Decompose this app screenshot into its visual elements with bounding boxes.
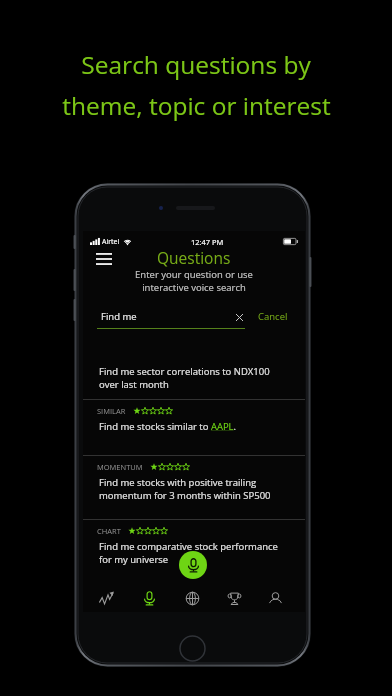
staticText: SIMILAR	[97, 406, 126, 416]
staticText: Airtel	[102, 237, 120, 247]
button[interactable]: Find me sector correlations to NDX100 ov…	[83, 358, 305, 398]
button[interactable]: MOMENTUM	[83, 455, 305, 509]
button[interactable]: Menu	[91, 248, 117, 270]
staticText: Cancel	[258, 310, 288, 323]
button[interactable]: Globe	[176, 585, 208, 611]
staticText: Find me	[101, 310, 137, 323]
button[interactable]: Voice search	[179, 551, 207, 579]
staticText: Find me comparative stock performance fo…	[99, 540, 278, 566]
staticText: 12:47 PM	[191, 237, 224, 247]
button[interactable]: Trending	[90, 585, 122, 611]
staticText: Enter your question or use interactive v…	[135, 268, 253, 294]
button[interactable]: SIMILAR	[83, 399, 305, 440]
staticText: Find me sector correlations to NDX100 ov…	[99, 365, 270, 391]
staticText: Find me stocks similar to AAPL.	[99, 420, 237, 433]
other: Clear	[236, 314, 243, 321]
button[interactable]: Profile	[259, 585, 291, 611]
staticText: Find me stocks with positive trailing mo…	[99, 476, 271, 502]
staticText: MOMENTUM	[97, 462, 143, 472]
button[interactable]: Cancel	[258, 310, 288, 323]
button[interactable]: Leaderboard	[218, 585, 250, 611]
button[interactable]: CHART	[83, 519, 305, 573]
button[interactable]: Voice search	[133, 585, 165, 611]
button[interactable]: Find me	[97, 305, 245, 331]
staticText: theme, topic or interest	[62, 89, 331, 122]
staticText: Questions	[157, 247, 231, 268]
staticText: Search questions by	[81, 48, 311, 81]
staticText: CHART	[97, 526, 121, 536]
